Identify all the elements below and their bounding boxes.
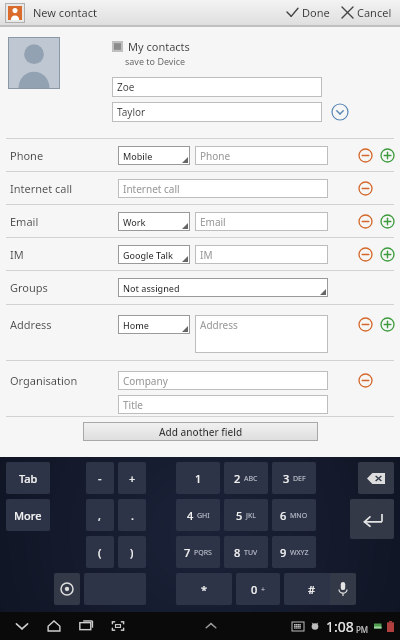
staticText: * [201, 582, 208, 597]
button[interactable]: * [176, 573, 232, 605]
button[interactable]: mic [330, 573, 356, 605]
button[interactable]: ) [118, 536, 146, 568]
staticText: Phone [10, 148, 118, 163]
button[interactable]: Contact photo [8, 37, 60, 89]
button[interactable]: Address [195, 315, 328, 353]
staticText: 1:08 [326, 617, 354, 636]
button[interactable]: Screenshot [106, 614, 130, 638]
staticText: MNO [290, 511, 308, 521]
button[interactable]: , [86, 499, 114, 531]
button[interactable]: 1 [176, 462, 220, 494]
button[interactable]: enter [350, 499, 394, 539]
button[interactable]: Title [118, 395, 328, 414]
staticText: Taylor [117, 105, 146, 119]
button[interactable]: Address [0, 305, 400, 360]
button[interactable]: Email [195, 212, 328, 231]
staticText: Email [200, 215, 226, 229]
button[interactable]: Internet call [118, 179, 328, 198]
staticText: Internet call [10, 181, 118, 196]
button[interactable]: Company [118, 371, 328, 390]
button[interactable]: Not assigned [118, 278, 328, 297]
button[interactable]: 0 [236, 573, 280, 605]
button[interactable]: Tab [6, 462, 50, 494]
button[interactable]: Show notifications [199, 614, 223, 638]
button[interactable]: Email [0, 205, 400, 237]
button[interactable]: Internet call [0, 172, 400, 204]
staticText: 5 [236, 508, 243, 523]
button[interactable]: settings [54, 573, 80, 605]
staticText: More [14, 508, 42, 523]
button[interactable]: backspace [358, 462, 394, 494]
staticText: ) [130, 545, 134, 560]
button[interactable]: Remove field [354, 177, 376, 199]
staticText: WXYZ [290, 548, 309, 558]
button[interactable]: 6 [272, 499, 316, 531]
staticText: Mobile [123, 150, 153, 162]
button[interactable]: IM [0, 238, 400, 270]
staticText: Address [200, 318, 238, 332]
button[interactable]: 9 [272, 536, 316, 568]
staticText: # [308, 582, 316, 597]
staticText: - [98, 471, 102, 486]
button[interactable]: Taylor [112, 102, 322, 122]
button[interactable]: Home [118, 315, 190, 334]
button[interactable]: Zoe [112, 77, 322, 97]
button[interactable]: 3 [272, 462, 316, 494]
button[interactable]: Groups [0, 271, 400, 304]
button[interactable]: 7 [176, 536, 220, 568]
button[interactable]: Remove field [354, 313, 376, 335]
button[interactable]: - [86, 462, 114, 494]
button[interactable]: Remove field [354, 369, 376, 391]
button[interactable]: Remove field [354, 144, 376, 166]
staticText: save to Device [125, 55, 186, 67]
button[interactable]: Phone [195, 146, 328, 165]
staticText: IM [10, 247, 118, 262]
button[interactable]: 2 [224, 462, 268, 494]
button[interactable]: Add field [376, 144, 398, 166]
staticText: Work [123, 216, 146, 228]
staticText: Home [123, 319, 149, 331]
button[interactable]: Mobile [118, 146, 190, 165]
staticText: Organisation [10, 373, 118, 388]
button[interactable]: Cancel [336, 0, 400, 25]
staticText: Company [123, 374, 168, 388]
staticText: JKL [246, 511, 256, 521]
staticText: . [131, 508, 134, 523]
staticText: Groups [10, 280, 118, 295]
button[interactable]: Add field [376, 313, 398, 335]
button[interactable]: Home [42, 614, 66, 638]
staticText: 4 [187, 508, 194, 523]
button[interactable]: Remove field [354, 210, 376, 232]
button[interactable]: # [284, 573, 340, 605]
button[interactable]: 5 [224, 499, 268, 531]
button[interactable]: IM [195, 245, 328, 264]
button[interactable]: Done [281, 0, 336, 25]
button[interactable]: Hide keyboard [10, 614, 34, 638]
button[interactable]: Add another field [83, 422, 318, 441]
button[interactable]: Contacts app icon [5, 3, 25, 23]
button[interactable]: Add field [376, 210, 398, 232]
button[interactable]: Work [118, 212, 190, 231]
staticText: 6 [280, 508, 287, 523]
button[interactable]: Phone [0, 139, 400, 171]
button[interactable]: My contacts [112, 39, 190, 54]
button[interactable]: . [118, 499, 146, 531]
button[interactable]: Google Talk [118, 245, 190, 264]
button[interactable]: Expand name fields [330, 102, 350, 122]
button[interactable]: 8 [224, 536, 268, 568]
button[interactable]: 4 [176, 499, 220, 531]
staticText: IM [200, 248, 213, 262]
button[interactable]: Add field [376, 243, 398, 265]
button[interactable]: Organisation [0, 361, 400, 416]
button[interactable]: Recent apps [74, 614, 98, 638]
staticText: Address [10, 317, 118, 332]
staticText: Cancel [357, 5, 392, 20]
staticText: ABC [244, 474, 258, 484]
button[interactable]: + [118, 462, 146, 494]
button[interactable]: More [6, 499, 50, 531]
button[interactable]: ( [86, 536, 114, 568]
staticText: GHI [197, 511, 210, 521]
button[interactable]: Remove field [354, 243, 376, 265]
staticText: 1 [195, 471, 202, 486]
